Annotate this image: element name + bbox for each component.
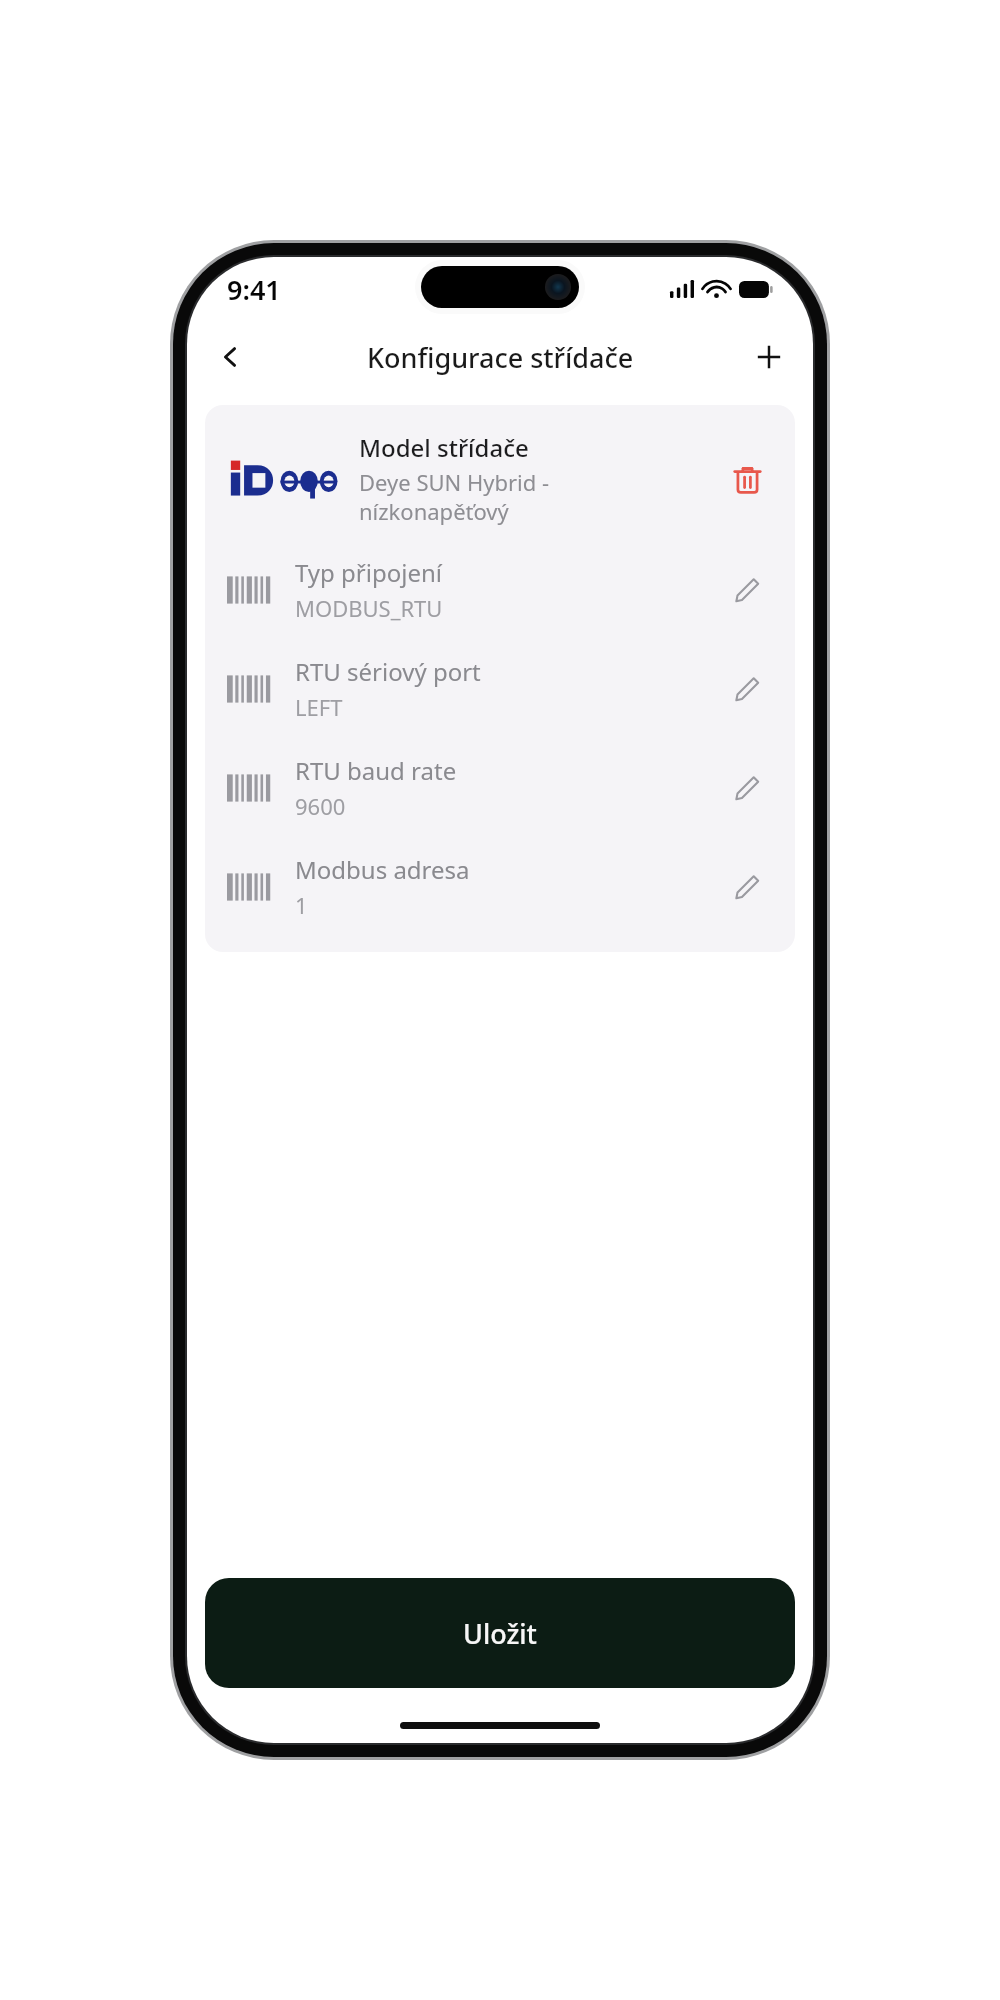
staticText: 1 xyxy=(295,890,308,920)
button[interactable]: RTU baud rate xyxy=(205,738,795,837)
button[interactable]: Uložit xyxy=(205,1578,795,1688)
button[interactable]: RTU sériový port xyxy=(205,639,795,738)
staticText: Konfigurace střídače xyxy=(367,339,634,376)
button[interactable]: Delete xyxy=(721,453,773,505)
staticText: Deye SUN Hybrid - nízkonapěťový xyxy=(359,467,550,526)
staticText: RTU sériový port xyxy=(295,655,481,688)
button[interactable]: Add xyxy=(743,331,795,383)
staticText: 9600 xyxy=(295,791,346,821)
staticText: Modbus adresa xyxy=(295,853,470,886)
staticText: Uložit xyxy=(463,1615,537,1652)
button[interactable]: Model střídače xyxy=(205,405,795,540)
button[interactable]: Modbus adresa xyxy=(205,837,795,936)
staticText: LEFT xyxy=(295,692,343,722)
button[interactable]: Edit Typ připojení xyxy=(721,564,773,616)
staticText: 9:41 xyxy=(227,271,281,308)
staticText: MODBUS_RTU xyxy=(295,593,443,623)
staticText: Typ připojení xyxy=(295,556,442,589)
button[interactable]: Typ připojení xyxy=(205,540,795,639)
button[interactable]: Edit RTU sériový port xyxy=(721,663,773,715)
button[interactable]: Edit Modbus adresa xyxy=(721,861,773,913)
staticText: RTU baud rate xyxy=(295,754,457,787)
button[interactable]: Edit RTU baud rate xyxy=(721,762,773,814)
staticText: Model střídače xyxy=(359,431,529,464)
button[interactable]: Back xyxy=(205,331,257,383)
